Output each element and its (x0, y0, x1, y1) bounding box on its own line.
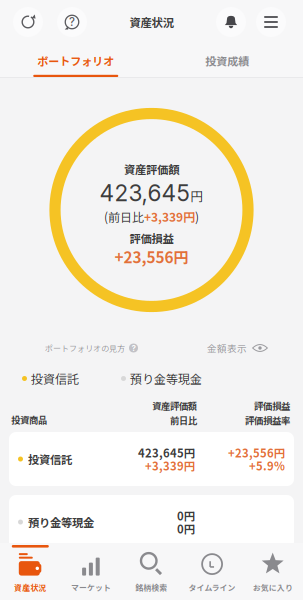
staticText: ) (195, 208, 199, 225)
button[interactable]: 更新 (13, 7, 43, 37)
staticText: 資産状況 (129, 14, 173, 30)
staticText: 預り金等現金 (130, 370, 202, 387)
staticText: +23,556円 (228, 444, 285, 461)
staticText: +3,339円 (145, 457, 195, 474)
button[interactable]: 銘柄検索 (121, 543, 182, 600)
staticText: 資産評価額 (124, 161, 179, 177)
staticText: 円 (190, 187, 203, 205)
staticText: ポートフォリオの見方 (45, 342, 125, 354)
staticText: 前日比 (170, 413, 197, 427)
button[interactable]: 資産状況 (0, 543, 61, 600)
staticText: +3,339円 (144, 208, 195, 225)
button[interactable]: 投資信託 (9, 432, 294, 486)
staticText: +5.9% (249, 457, 285, 474)
staticText: タイムライン (189, 582, 236, 593)
button[interactable]: マーケット (61, 543, 121, 600)
button[interactable]: 投資成績 (151, 44, 303, 77)
button[interactable]: ポートフォリオ (0, 44, 151, 77)
staticText: お気に入り (253, 582, 293, 593)
staticText: 預り金等現金 (28, 514, 94, 530)
button[interactable]: お気に入り (242, 543, 303, 600)
button[interactable]: お知らせ (216, 7, 246, 37)
button[interactable]: ポートフォリオの見方 (45, 340, 138, 356)
staticText: ポートフォリオ (37, 53, 114, 69)
staticText: ? (69, 15, 75, 29)
staticText: +23,556円 (114, 245, 188, 268)
staticText: 0円 (177, 507, 195, 524)
button[interactable]: 金額表示 (207, 340, 268, 356)
staticText: 投資信託 (28, 451, 72, 467)
staticText: (前日比 (104, 208, 144, 225)
button[interactable]: メニュー (256, 7, 286, 37)
staticText: 評価損益 (129, 230, 173, 246)
button[interactable]: タイムライン (182, 543, 242, 600)
staticText: 資産評価額 (152, 399, 197, 412)
button[interactable]: ヘルプ (57, 7, 87, 37)
staticText: 投資商品 (11, 413, 47, 426)
staticText: 評価損益 (254, 399, 290, 412)
staticText: 投資成績 (205, 53, 249, 69)
staticText: ? (131, 343, 135, 353)
staticText: 銘柄検索 (135, 582, 167, 593)
staticText: 0円 (177, 520, 195, 537)
staticText: 資産状況 (14, 582, 46, 593)
button[interactable]: 預り金等現金 (9, 495, 294, 549)
staticText: 金額表示 (207, 341, 247, 355)
staticText: 423,645 (99, 179, 189, 207)
staticText: 423,645円 (138, 444, 195, 461)
staticText: 投資信託 (31, 370, 79, 387)
staticText: 評価損益率 (245, 413, 290, 427)
staticText: マーケット (71, 582, 111, 593)
